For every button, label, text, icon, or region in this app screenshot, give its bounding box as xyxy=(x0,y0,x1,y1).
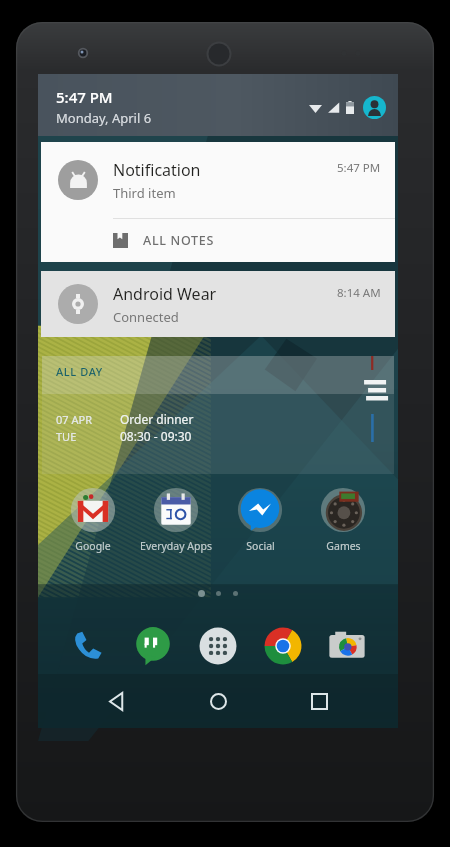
button[interactable]: ALL NOTES xyxy=(41,219,395,262)
button[interactable]: Home xyxy=(196,679,240,723)
button[interactable]: User account xyxy=(363,96,386,119)
staticText: ALL NOTES xyxy=(143,232,215,249)
staticText: 8:14 AM xyxy=(337,285,381,301)
staticText: Google xyxy=(75,539,111,553)
button[interactable]: Camera xyxy=(321,620,373,672)
staticText: Connected xyxy=(113,308,179,326)
staticText: 5:47 PM xyxy=(337,160,381,176)
staticText: Social xyxy=(246,539,275,553)
button[interactable]: Back xyxy=(95,679,139,723)
button[interactable]: Google xyxy=(54,486,132,553)
button[interactable]: Notification xyxy=(41,142,395,262)
staticText: 07 APR xyxy=(56,412,92,427)
button[interactable]: Android Wear xyxy=(41,271,395,337)
button[interactable]: Games xyxy=(304,486,382,553)
staticText: Notification xyxy=(113,159,201,181)
staticText: Monday, April 6 xyxy=(56,109,152,127)
staticText: Games xyxy=(326,539,361,553)
button[interactable]: Chrome xyxy=(257,620,309,672)
button[interactable]: Recents xyxy=(297,679,341,723)
staticText: Order dinner xyxy=(120,411,194,427)
button[interactable]: Everyday Apps xyxy=(137,486,215,553)
staticText: Third item xyxy=(113,184,176,202)
staticText: ALL DAY xyxy=(56,364,103,379)
staticText: Everyday Apps xyxy=(140,539,212,553)
button[interactable]: 5:47 PM xyxy=(38,74,398,136)
button[interactable]: Apps xyxy=(192,620,244,672)
staticText: Android Wear xyxy=(113,283,217,305)
staticText: TUE xyxy=(56,429,77,444)
button[interactable]: Social xyxy=(221,486,299,553)
staticText: 08:30 - 09:30 xyxy=(120,428,192,444)
button[interactable]: Hangouts xyxy=(127,620,179,672)
staticText: 5:47 PM xyxy=(56,87,113,107)
button[interactable]: Phone xyxy=(63,620,115,672)
button[interactable]: ALL DAY xyxy=(42,356,394,474)
